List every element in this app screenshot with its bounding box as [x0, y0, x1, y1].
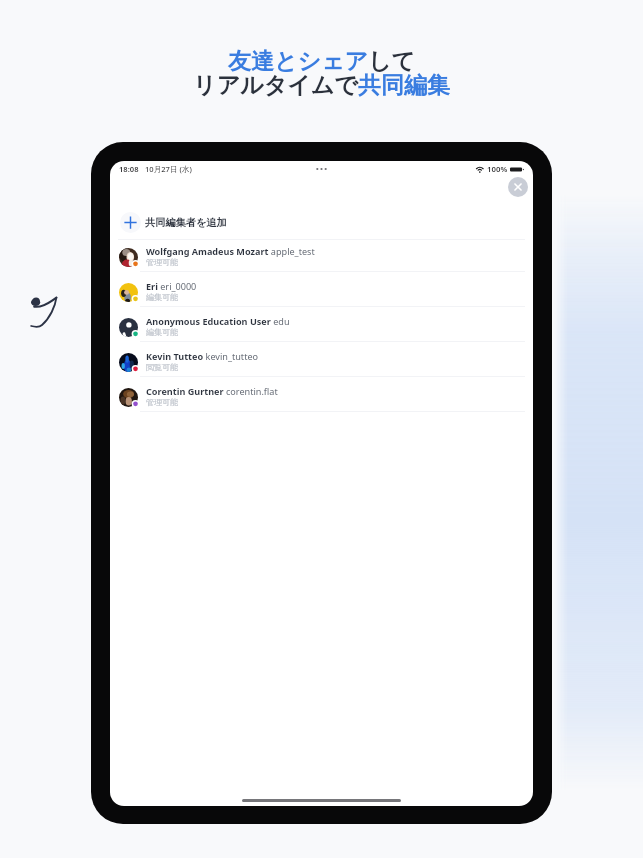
staticText: Eri eri_0000	[146, 280, 197, 292]
staticText: 編集可能	[146, 327, 179, 337]
button[interactable]: Wolfgang Amadeus Mozart apple_test	[110, 240, 533, 274]
staticText: Anonymous Education User edu	[146, 315, 290, 327]
button[interactable]: Kevin Tutteo kevin_tutteo	[110, 345, 533, 379]
staticText: 友達とシェアして リアルタイムで共同編集	[193, 47, 450, 99]
staticText: 10月27日 (水)	[145, 164, 192, 174]
staticText: 18:08	[119, 164, 139, 174]
staticText: Wolfgang Amadeus Mozart apple_test	[146, 245, 315, 257]
staticText: 共同編集者を追加	[145, 216, 227, 229]
button[interactable]: 共同編集者を追加	[110, 211, 533, 234]
staticText: 編集可能	[146, 292, 179, 302]
staticText: 管理可能	[146, 397, 179, 407]
staticText: 閲覧可能	[146, 362, 179, 372]
button[interactable]: Anonymous Education User edu	[110, 310, 533, 344]
button[interactable]: Eri eri_0000	[110, 275, 533, 309]
staticText: Kevin Tutteo kevin_tutteo	[146, 350, 259, 362]
staticText: 100%	[487, 164, 508, 175]
staticText: 管理可能	[146, 257, 179, 267]
staticText: Corentin Gurtner corentin.flat	[146, 385, 278, 397]
button[interactable]: Close	[508, 177, 528, 197]
button[interactable]: Corentin Gurtner corentin.flat	[110, 380, 533, 414]
